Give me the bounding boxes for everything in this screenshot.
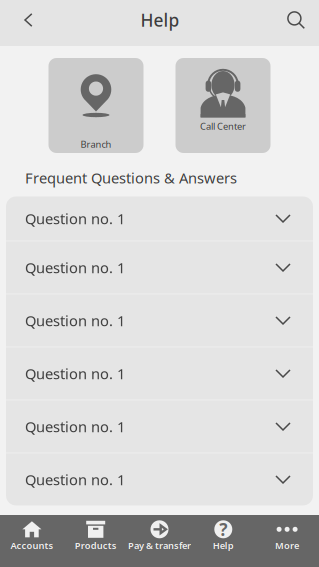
button[interactable]: Products <box>64 515 128 567</box>
button[interactable]: Accounts <box>0 515 64 567</box>
staticText: Question no. 1 <box>25 258 125 277</box>
staticText: Question no. 1 <box>25 311 125 330</box>
button[interactable]: ? <box>191 515 255 567</box>
button[interactable]: Pay & transfer <box>128 515 191 567</box>
button[interactable]: More <box>255 515 319 567</box>
button[interactable]: Question no. 1 <box>6 241 313 293</box>
staticText: Help <box>213 539 234 552</box>
staticText: Call Center <box>200 120 246 132</box>
staticText: Products <box>75 539 117 552</box>
staticText: Question no. 1 <box>25 364 125 383</box>
staticText: Question no. 1 <box>25 470 125 489</box>
button[interactable]: Question no. 1 <box>6 347 313 399</box>
staticText: Question no. 1 <box>25 209 125 228</box>
button[interactable]: Call Center <box>175 58 270 153</box>
button[interactable]: Question no. 1 <box>6 294 313 346</box>
staticText: Pay & transfer <box>128 539 191 552</box>
button[interactable]: Back <box>0 0 47 40</box>
button[interactable]: Question no. 1 <box>6 196 313 240</box>
staticText: Question no. 1 <box>25 417 125 436</box>
staticText: Accounts <box>10 539 53 552</box>
button[interactable]: Branch <box>48 58 143 153</box>
button[interactable]: Question no. 1 <box>6 453 313 505</box>
button[interactable]: Question no. 1 <box>6 400 313 452</box>
staticText: Frequent Questions & Answers <box>25 168 237 187</box>
staticText: ? <box>219 518 227 541</box>
staticText: Help <box>140 8 179 31</box>
button[interactable]: Search <box>273 0 319 40</box>
staticText: Branch <box>80 138 111 150</box>
staticText: More <box>275 539 299 552</box>
